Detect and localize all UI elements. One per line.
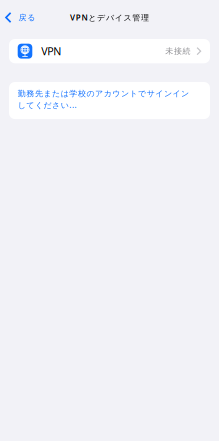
staticText: 未接続 — [165, 46, 190, 56]
staticText: 戻る — [19, 13, 35, 22]
staticText: 勤務先または学校のアカウントでサインインしてください... — [18, 89, 189, 110]
staticText: VPN — [41, 44, 61, 58]
staticText: VPNとデバイス管理 — [70, 12, 149, 23]
button[interactable]: 勤務先または学校のアカウントでサインインしてください... — [9, 82, 210, 119]
button[interactable]: 戻る — [0, 7, 36, 28]
button[interactable]: VPN — [9, 39, 210, 63]
